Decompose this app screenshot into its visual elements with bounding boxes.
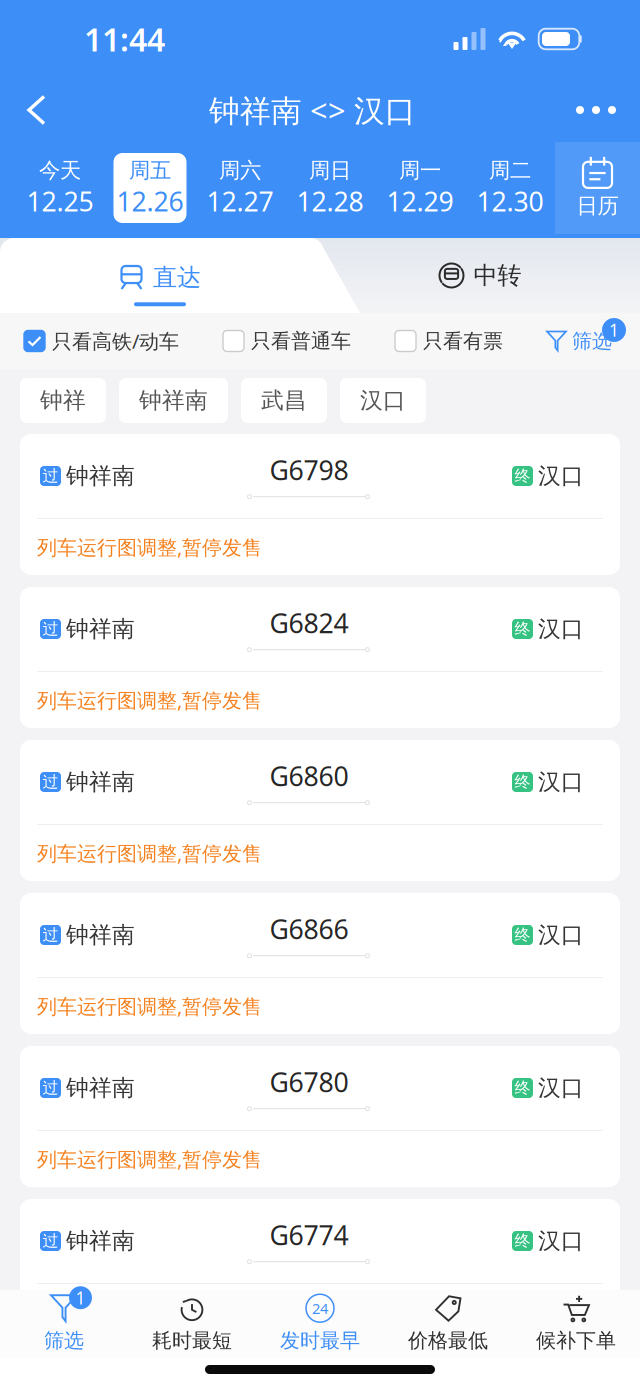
staticText: 1	[609, 318, 619, 341]
button[interactable]: 汉口	[340, 378, 426, 423]
staticText: 列车运行图调整,暂停发售	[37, 1146, 262, 1172]
button[interactable]: 中转	[320, 238, 640, 313]
button[interactable]: 钟祥南	[119, 378, 228, 423]
button[interactable]: 只看普通车	[223, 316, 351, 366]
button[interactable]: 钟祥	[20, 378, 106, 423]
staticText: 今天	[39, 157, 81, 183]
staticText: G6796	[269, 1370, 348, 1387]
staticText: 周六	[219, 157, 261, 183]
staticText: 只看高铁/动车	[52, 328, 179, 354]
staticText: G6774	[269, 1217, 348, 1253]
staticText: G6866	[269, 911, 348, 947]
staticText: 筛选	[572, 329, 612, 353]
staticText: 钟祥南	[66, 1227, 135, 1255]
staticText: 汉口	[538, 921, 584, 949]
button[interactable]: 1	[0, 1290, 128, 1358]
staticText: 终	[514, 1078, 530, 1098]
button[interactable]: 直达	[0, 238, 320, 313]
staticText: 汉口	[538, 615, 584, 643]
staticText: 列车运行图调整,暂停发售	[37, 993, 262, 1019]
staticText: 过	[42, 925, 58, 945]
staticText: 周二	[489, 157, 531, 183]
button[interactable]: 只看有票	[395, 316, 503, 366]
staticText: 汉口	[360, 387, 406, 414]
button[interactable]: 价格最低	[384, 1290, 512, 1358]
button[interactable]: 今天	[15, 152, 105, 224]
staticText: 钟祥南	[66, 921, 135, 949]
staticText: 终	[514, 619, 530, 639]
button[interactable]: 耗时最短	[128, 1290, 256, 1358]
staticText: 钟祥南 <> 汉口	[209, 90, 416, 130]
staticText: 终	[514, 925, 530, 945]
staticText: G6824	[269, 605, 348, 641]
staticText: 周一	[399, 157, 441, 183]
staticText: 12.27	[206, 183, 273, 219]
button[interactable]: 过	[20, 1199, 620, 1340]
button[interactable]: 周一	[375, 152, 465, 224]
staticText: 候补下单	[536, 1328, 616, 1353]
button[interactable]: 过	[20, 1352, 620, 1387]
staticText: 终	[514, 466, 530, 486]
staticText: 终	[514, 772, 530, 792]
staticText: 日历	[576, 193, 618, 219]
button[interactable]: 日历	[555, 142, 640, 234]
staticText: 只看普通车	[251, 329, 351, 353]
staticText: G6780	[269, 1064, 348, 1100]
staticText: 12.26	[116, 183, 183, 219]
staticText: 过	[42, 619, 58, 639]
staticText: 汉口	[538, 1227, 584, 1255]
staticText: 过	[42, 466, 58, 486]
button[interactable]: 只看高铁/动车	[24, 316, 179, 366]
staticText: 武昌	[261, 387, 307, 414]
button[interactable]: 过	[20, 1046, 620, 1187]
button[interactable]: 周五	[105, 152, 195, 224]
button[interactable]: 过	[20, 434, 620, 575]
staticText: 钟祥南	[66, 768, 135, 796]
staticText: 价格最低	[408, 1328, 488, 1353]
staticText: 发时最早	[280, 1328, 360, 1353]
staticText: 12.28	[296, 183, 363, 219]
staticText: 11:44	[84, 18, 165, 60]
staticText: 列车运行图调整,暂停发售	[37, 1299, 262, 1325]
staticText: 12.29	[386, 183, 453, 219]
button[interactable]: 周六	[195, 152, 285, 224]
staticText: 只看有票	[423, 329, 503, 353]
button[interactable]: More options	[552, 88, 640, 132]
staticText: 终	[514, 1231, 530, 1251]
staticText: 列车运行图调整,暂停发售	[37, 687, 262, 713]
staticText: 钟祥	[40, 387, 86, 414]
button[interactable]: 筛选	[547, 316, 612, 366]
staticText: 耗时最短	[152, 1328, 232, 1353]
staticText: 过	[42, 772, 58, 792]
staticText: 汉口	[538, 1074, 584, 1102]
staticText: 1	[75, 1286, 85, 1309]
button[interactable]: 武昌	[241, 378, 327, 423]
staticText: 直达	[153, 263, 201, 292]
staticText: 汉口	[538, 768, 584, 796]
staticText: 12.25	[26, 183, 93, 219]
staticText: G6798	[269, 452, 348, 488]
button[interactable]: 过	[20, 740, 620, 881]
staticText: 钟祥南	[66, 1074, 135, 1102]
staticText: 中转	[473, 261, 521, 290]
staticText: 周五	[129, 157, 171, 183]
button[interactable]: Back	[0, 84, 73, 135]
button[interactable]: 候补下单	[512, 1290, 640, 1358]
staticText: 钟祥南	[66, 462, 135, 490]
button[interactable]: 周日	[285, 152, 375, 224]
button[interactable]: 过	[20, 893, 620, 1034]
staticText: 钟祥南	[66, 615, 135, 643]
staticText: 12.30	[476, 183, 543, 219]
staticText: 过	[42, 1078, 58, 1098]
staticText: G6860	[269, 758, 348, 794]
staticText: 过	[42, 1231, 58, 1251]
button[interactable]: 24	[256, 1290, 384, 1358]
staticText: 筛选	[44, 1328, 84, 1353]
button[interactable]: 周二	[465, 152, 555, 224]
button[interactable]: 过	[20, 587, 620, 728]
staticText: 列车运行图调整,暂停发售	[37, 840, 262, 866]
